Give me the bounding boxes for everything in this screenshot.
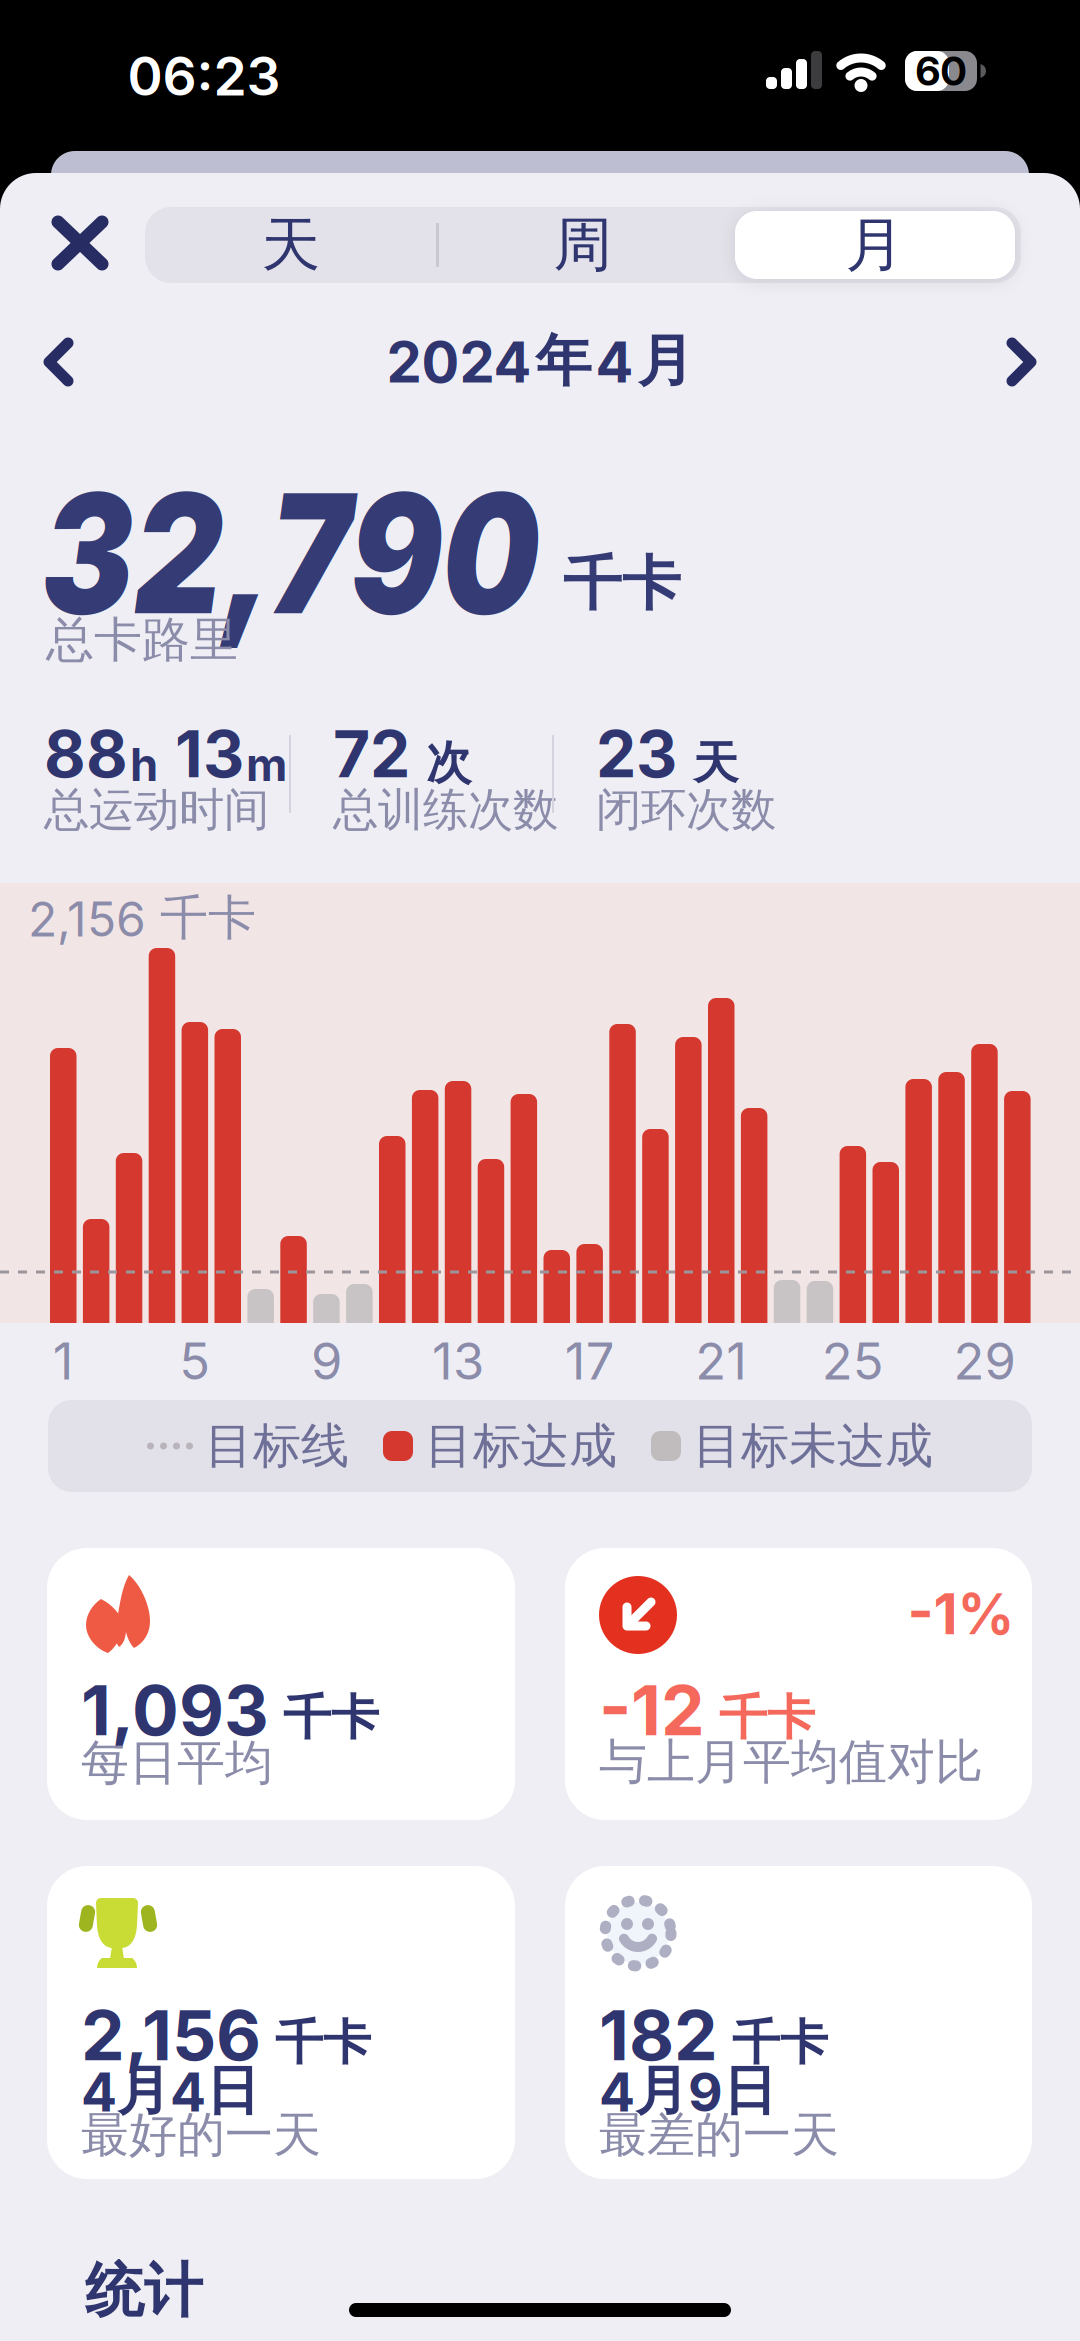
staticText: 目标未达成: [693, 1410, 933, 1482]
staticText: 06:23: [127, 38, 280, 114]
staticText: 32,790: [42, 434, 642, 672]
staticText: 23: [596, 708, 677, 800]
staticText: 目标线: [205, 1410, 349, 1482]
staticText: 总运动时间: [44, 776, 269, 844]
staticText: 1: [53, 1324, 74, 1397]
staticText: -12: [599, 1660, 705, 1760]
staticText: 4月9日: [599, 2051, 776, 2131]
staticText: 千卡: [732, 2007, 828, 2079]
staticText: 最差的一天: [599, 2099, 839, 2171]
staticText: 总训练次数: [333, 776, 558, 844]
staticText: 4月4日: [81, 2051, 259, 2131]
staticText: 每日平均: [81, 1727, 273, 1799]
staticText: 最好的一天: [81, 2099, 321, 2171]
staticText: 5: [179, 1324, 210, 1397]
staticText: 周: [553, 201, 612, 289]
staticText: 闭环次数: [596, 776, 776, 844]
staticText: 天: [261, 201, 320, 289]
staticText: 与上月平均值对比: [599, 1726, 983, 1798]
staticText: 72: [333, 708, 410, 800]
staticText: 统计: [85, 2247, 203, 2335]
staticText: 千卡: [275, 2007, 371, 2079]
staticText: 目标达成: [425, 1410, 617, 1482]
staticText: 182: [599, 1985, 718, 2085]
staticText: 21: [695, 1324, 747, 1397]
button[interactable]: 下个月: [984, 335, 1038, 389]
staticText: 9: [311, 1324, 342, 1397]
staticText: 2,156 千卡: [28, 882, 256, 954]
staticText: 千卡: [283, 1682, 379, 1754]
staticText: 88: [44, 708, 128, 800]
staticText: 千卡: [563, 540, 681, 628]
staticText: 29: [953, 1324, 1015, 1397]
button[interactable]: 关闭: [38, 202, 122, 284]
staticText: m: [246, 732, 287, 797]
staticText: 25: [822, 1324, 884, 1397]
button[interactable]: 月: [729, 207, 1021, 283]
button[interactable]: 周: [437, 207, 729, 283]
staticText: 13: [432, 1324, 484, 1397]
staticText: 1,093: [81, 1660, 269, 1760]
staticText: 2,156: [81, 1985, 261, 2085]
staticText: h: [130, 732, 158, 797]
staticText: 月: [845, 201, 904, 289]
button[interactable]: 上个月: [42, 335, 96, 389]
staticText: 总卡路里: [46, 604, 238, 676]
staticText: -1%: [907, 1574, 1014, 1654]
staticText: 天: [679, 729, 738, 797]
staticText: 60: [915, 42, 966, 100]
staticText: 千卡: [719, 1682, 815, 1754]
staticText: 2024 年 4 月: [386, 319, 693, 403]
staticText: 次: [412, 729, 471, 797]
staticText: 13: [160, 708, 244, 800]
staticText: 17: [565, 1324, 615, 1397]
button[interactable]: 天: [145, 207, 437, 283]
